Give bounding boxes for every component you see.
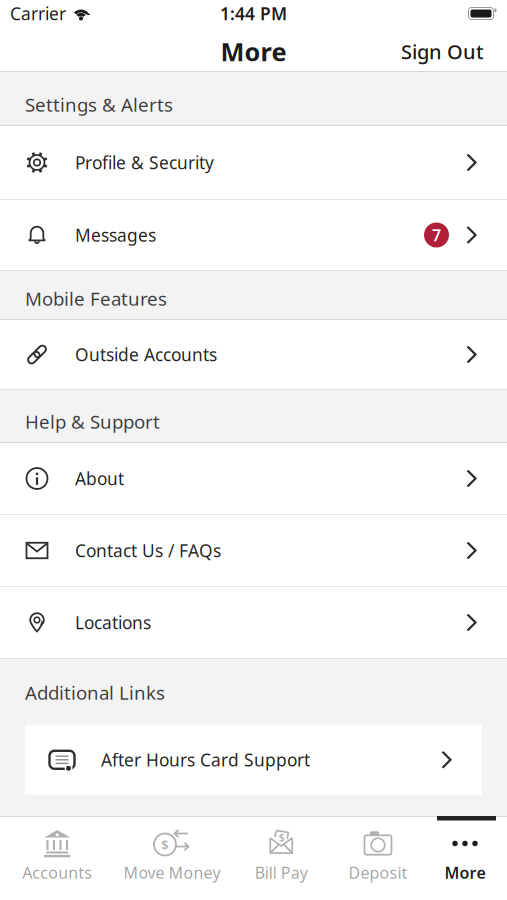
button[interactable]: Accounts (0, 817, 114, 883)
staticText: Locations (75, 611, 151, 634)
staticText: Deposit (348, 862, 407, 883)
button[interactable]: Deposit (333, 817, 423, 883)
staticText: Settings & Alerts (25, 92, 173, 117)
button[interactable]: $ (229, 817, 333, 883)
button[interactable]: $ (114, 817, 229, 883)
staticText: Bill Pay (255, 862, 308, 883)
staticText: About (75, 467, 124, 490)
button[interactable]: After Hours Card Support (25, 725, 482, 795)
button[interactable]: Locations (0, 587, 507, 659)
button[interactable]: Profile & Security (0, 126, 507, 200)
staticText: 1:44 PM (220, 2, 287, 25)
staticText: More (220, 35, 286, 68)
staticText: Outside Accounts (75, 343, 217, 366)
staticText: Additional Links (25, 680, 165, 705)
staticText: Mobile Features (25, 286, 167, 311)
staticText: Help & Support (25, 409, 160, 434)
staticText: After Hours Card Support (101, 748, 310, 771)
staticText: Carrier (10, 2, 66, 25)
staticText: Sign Out (401, 38, 484, 65)
staticText: Messages (75, 223, 156, 246)
staticText: $ (161, 836, 169, 853)
button[interactable]: More (423, 817, 507, 883)
button[interactable]: Messages (0, 200, 507, 271)
staticText: Accounts (22, 862, 92, 883)
button[interactable]: About (0, 443, 507, 515)
staticText: 7 (432, 224, 441, 246)
staticText: Contact Us / FAQs (75, 539, 221, 562)
button[interactable]: Contact Us / FAQs (0, 515, 507, 587)
button[interactable]: Outside Accounts (0, 320, 507, 390)
staticText: Profile & Security (75, 151, 214, 174)
staticText: Move Money (123, 862, 220, 883)
button[interactable]: Sign Out (401, 38, 507, 65)
staticText: $ (279, 830, 285, 844)
staticText: More (444, 862, 485, 883)
